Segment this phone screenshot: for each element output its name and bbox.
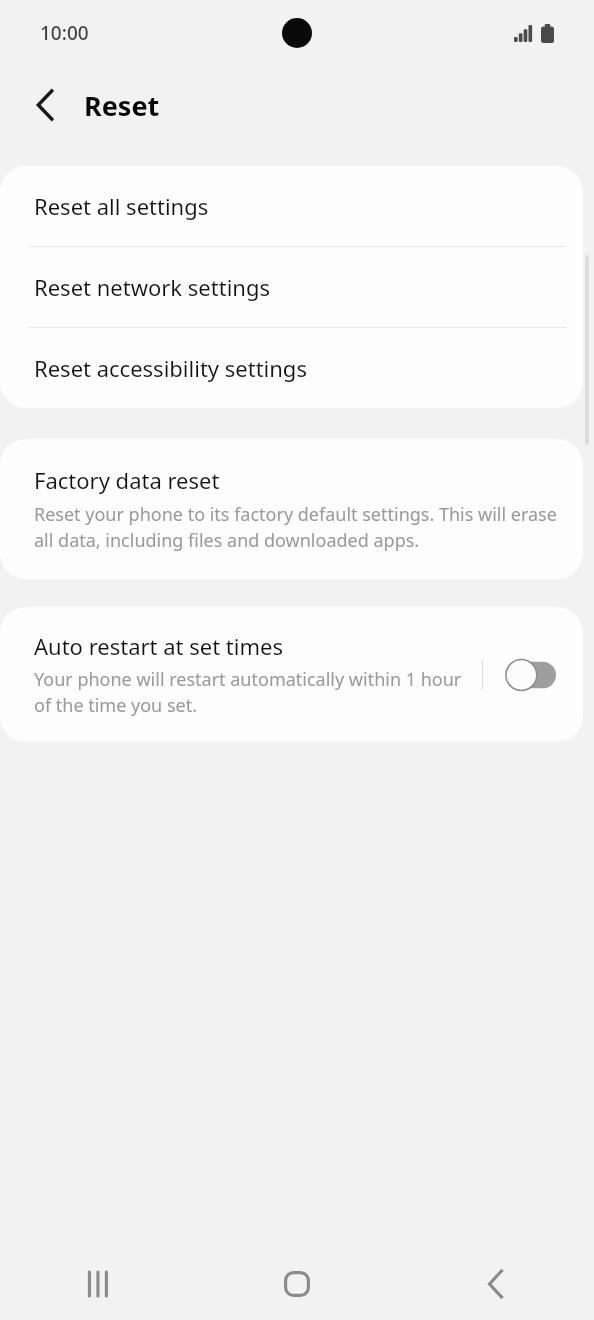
button[interactable]: Reset accessibility settings [0, 328, 583, 408]
staticText: Reset your phone to its factory default … [34, 502, 557, 553]
staticText: Factory data reset [34, 465, 220, 495]
button[interactable]: Reset network settings [0, 247, 583, 327]
button[interactable]: Back [396, 1248, 594, 1320]
button[interactable]: Auto restart at set times [0, 607, 482, 742]
staticText: Auto restart at set times [34, 631, 283, 661]
staticText: Reset accessibility settings [34, 353, 307, 383]
button[interactable]: Back [18, 78, 72, 132]
staticText: 10:00 [40, 20, 89, 46]
staticText: Reset network settings [34, 272, 270, 302]
staticText: Your phone will restart automatically wi… [34, 667, 470, 718]
staticText: Reset all settings [34, 191, 209, 221]
button[interactable]: Home [198, 1248, 396, 1320]
button[interactable]: Auto restart at set times toggle [502, 658, 556, 692]
staticText: Reset [84, 87, 160, 124]
button[interactable]: Factory data reset [0, 439, 583, 579]
button[interactable]: Reset all settings [0, 166, 583, 246]
button[interactable]: Recent apps [0, 1248, 198, 1320]
